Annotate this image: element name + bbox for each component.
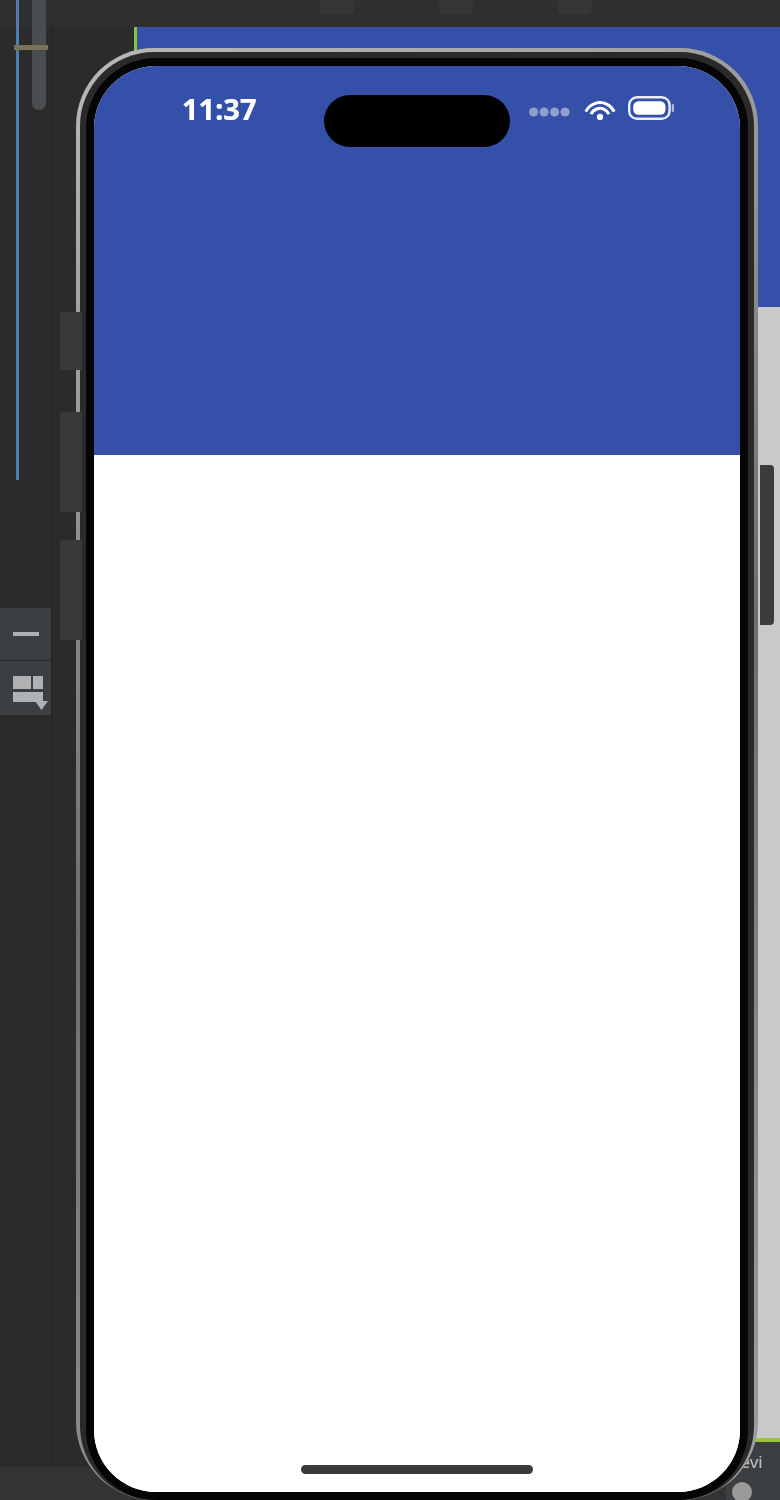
button[interactable]: Collapse: [0, 608, 51, 660]
staticText: 11:37: [182, 89, 257, 128]
staticText: Devi: [728, 1450, 763, 1473]
button[interactable]: Devi: [726, 1442, 780, 1500]
button[interactable]: Layout options: [0, 661, 51, 715]
